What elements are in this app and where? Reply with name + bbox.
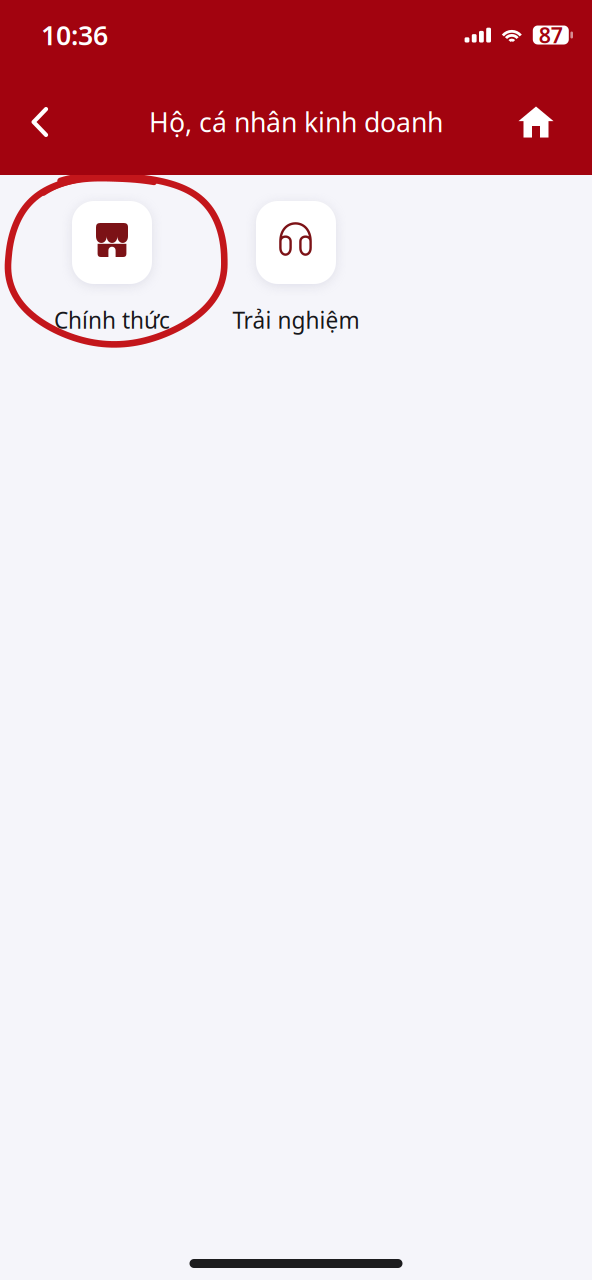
staticText: 10:36: [41, 17, 108, 53]
button[interactable]: Back: [14, 95, 66, 149]
button[interactable]: Trải nghiệm: [204, 201, 388, 332]
staticText: Hộ, cá nhân kinh doanh: [149, 104, 443, 140]
button[interactable]: Chính thức: [20, 201, 204, 332]
staticText: Trải nghiệm: [232, 305, 359, 335]
button[interactable]: Home: [510, 95, 562, 149]
staticText: Chính thức: [54, 305, 170, 335]
staticText: 87: [539, 21, 563, 49]
